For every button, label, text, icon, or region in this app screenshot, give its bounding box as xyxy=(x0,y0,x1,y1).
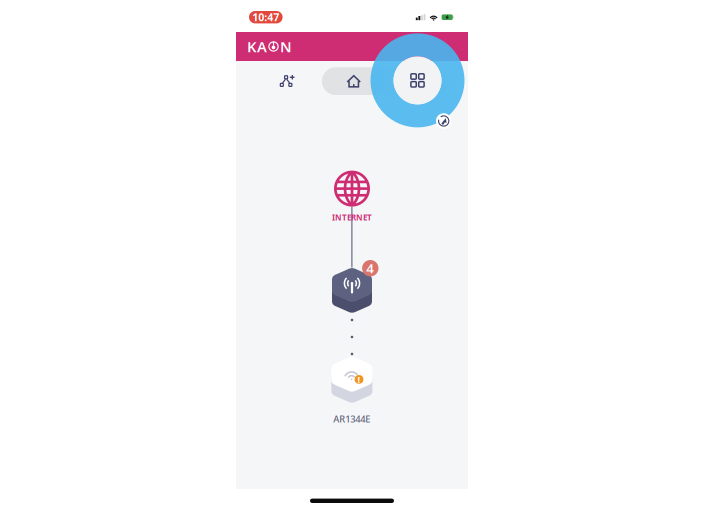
button[interactable]: Network map xyxy=(322,67,385,95)
staticText: 4 xyxy=(366,259,374,277)
staticText: AR1344E xyxy=(333,413,370,425)
staticText: A xyxy=(257,37,267,56)
staticText: 10:47 xyxy=(252,10,279,24)
staticText: N xyxy=(280,37,292,56)
button[interactable]: Device list xyxy=(385,67,449,95)
staticText: ! xyxy=(357,373,360,386)
staticText: K xyxy=(247,37,256,56)
button[interactable]: Device list xyxy=(393,56,441,104)
button[interactable]: Add device xyxy=(269,66,305,96)
staticText: INTERNET xyxy=(332,212,372,223)
